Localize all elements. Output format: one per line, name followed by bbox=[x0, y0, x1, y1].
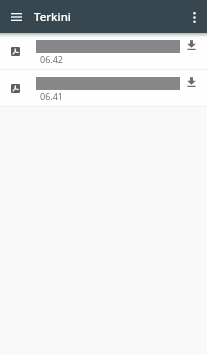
button[interactable]: 06.41 bbox=[0, 70, 207, 107]
button[interactable]: Download bbox=[181, 33, 207, 70]
staticText: 06.42 bbox=[40, 53, 64, 65]
button[interactable]: Download bbox=[181, 70, 207, 107]
button[interactable]: Navigation menu bbox=[4, 5, 28, 29]
staticText: 06.41 bbox=[40, 90, 64, 102]
button[interactable]: More options bbox=[182, 5, 206, 29]
staticText: Terkini bbox=[34, 9, 71, 25]
button[interactable]: 06.42 bbox=[0, 33, 207, 70]
